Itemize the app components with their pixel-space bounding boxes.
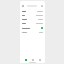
button[interactable]: Status <box>20 26 45 30</box>
button[interactable]: Menu <box>20 3 45 8</box>
button[interactable]: Profile <box>38 58 41 61</box>
button[interactable] <box>20 30 45 34</box>
button[interactable] <box>20 9 45 13</box>
button[interactable]: Search <box>31 58 34 61</box>
button[interactable] <box>20 21 45 25</box>
other: Status <box>41 27 43 29</box>
other: Menu <box>22 5 24 7</box>
button[interactable] <box>20 17 45 21</box>
button[interactable]: Home <box>24 58 27 61</box>
button[interactable] <box>20 13 45 17</box>
other: More options <box>41 5 43 7</box>
